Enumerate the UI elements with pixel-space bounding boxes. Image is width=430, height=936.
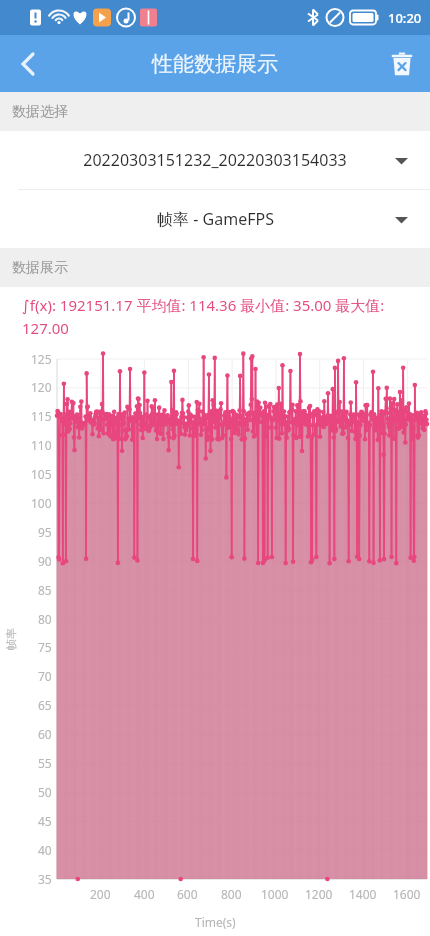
- staticText: 100: [31, 495, 52, 511]
- staticText: 110: [31, 437, 52, 453]
- button[interactable]: 帧率 - GameFPS: [0, 190, 430, 248]
- staticText: 65: [38, 697, 52, 713]
- staticText: 1600: [393, 886, 421, 902]
- button[interactable]: Delete: [374, 36, 430, 92]
- staticText: 75: [38, 639, 52, 655]
- staticText: ∫f(x): 192151.17 平均值: 114.36 最小值: 35.00 …: [22, 295, 420, 339]
- staticText: 400: [134, 886, 155, 902]
- button[interactable]: 20220303151232_20220303154033: [0, 131, 430, 189]
- button[interactable]: Back: [0, 36, 56, 92]
- staticText: 85: [38, 582, 52, 598]
- staticText: 125: [31, 351, 52, 367]
- staticText: 10:20: [388, 9, 422, 27]
- staticText: 帧率: [4, 628, 18, 650]
- staticText: 90: [38, 553, 52, 569]
- staticText: 数据展示: [12, 259, 68, 277]
- staticText: Time(s): [195, 914, 236, 930]
- staticText: 60: [38, 726, 52, 742]
- staticText: 1000: [261, 886, 289, 902]
- staticText: 600: [177, 886, 198, 902]
- staticText: 40: [38, 842, 52, 858]
- staticText: 性能数据展示: [152, 51, 278, 77]
- staticText: 50: [38, 784, 52, 800]
- staticText: 115: [31, 408, 52, 424]
- staticText: 95: [38, 524, 52, 540]
- staticText: 帧率 - GameFPS: [157, 208, 274, 230]
- staticText: 55: [38, 755, 52, 771]
- staticText: 200: [90, 886, 111, 902]
- staticText: 20220303151232_20220303154033: [83, 149, 347, 171]
- staticText: 数据选择: [12, 103, 68, 121]
- staticText: 35: [38, 871, 52, 887]
- staticText: 80: [38, 611, 52, 627]
- staticText: 1400: [349, 886, 377, 902]
- staticText: 45: [38, 813, 52, 829]
- staticText: 120: [31, 379, 52, 395]
- staticText: 70: [38, 668, 52, 684]
- staticText: 1200: [305, 886, 333, 902]
- staticText: 105: [31, 466, 52, 482]
- staticText: 800: [221, 886, 242, 902]
